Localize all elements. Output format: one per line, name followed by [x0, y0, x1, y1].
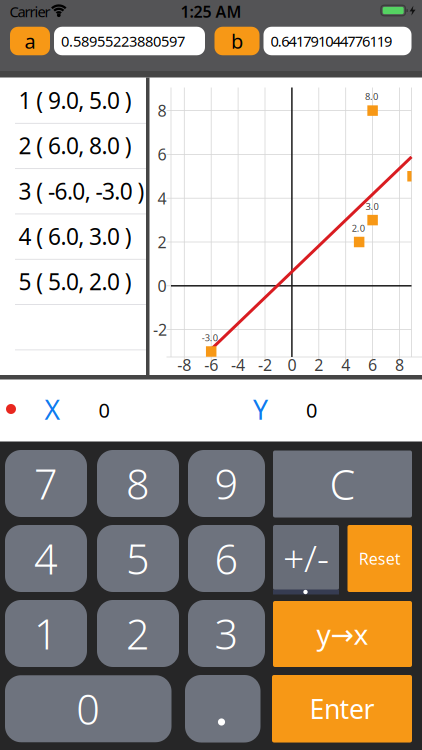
staticText: 6 [214, 531, 238, 586]
staticText: 3 [214, 606, 238, 661]
staticText: 4 [157, 188, 166, 209]
staticText: C [329, 457, 355, 511]
staticText: 8 [157, 100, 166, 121]
staticText: Reset [359, 548, 401, 569]
staticText: 0 [287, 354, 296, 375]
staticText: -8 [177, 354, 191, 375]
staticText: 8 [126, 456, 150, 511]
staticText: Enter [309, 691, 374, 726]
button[interactable]: +/- [273, 525, 339, 590]
staticText: 8.0 [365, 90, 378, 103]
button[interactable]: 3 ( -6.0, -3.0 ) [0, 168, 145, 213]
button[interactable]: 3 [188, 600, 265, 667]
button[interactable]: 8 [97, 450, 179, 517]
button[interactable]: Decimal point [185, 675, 260, 742]
button[interactable]: Enter [272, 675, 412, 742]
staticText: 3 ( -6.0, -3.0 ) [18, 176, 144, 206]
staticText: 2 [157, 231, 166, 253]
staticText: 1:25 AM [180, 1, 241, 22]
staticText: 2 ( 6.0, 8.0 ) [18, 130, 132, 161]
staticText: 4 ( 6.0, 3.0 ) [18, 221, 132, 251]
staticText: 1 [34, 606, 58, 661]
button[interactable]: C [273, 450, 412, 517]
button[interactable]: 9 [188, 450, 265, 517]
staticText: 0 [306, 397, 317, 423]
staticText: 0.641791044776119 [270, 31, 392, 51]
staticText: 5 ( 5.0, 2.0 ) [18, 266, 132, 296]
button[interactable]: 2 [97, 600, 179, 667]
staticText: 4 [34, 531, 58, 586]
staticText: 8 [395, 354, 404, 375]
button[interactable]: Reset [347, 525, 412, 592]
staticText: y→x [316, 615, 368, 653]
staticText: a [24, 28, 35, 54]
staticText: 5 [126, 531, 150, 586]
staticText: -2 [153, 319, 167, 340]
button[interactable]: 2 ( 6.0, 8.0 ) [0, 123, 145, 168]
staticText: 7 [34, 456, 58, 511]
staticText: 9 [214, 456, 238, 511]
button[interactable]: 5 [97, 525, 179, 592]
button[interactable]: b [214, 27, 259, 55]
staticText: +/- [283, 533, 329, 582]
staticText: -4 [231, 354, 245, 375]
button[interactable]: 7 [5, 450, 87, 517]
staticText: 3.0 [365, 200, 378, 212]
button[interactable]: 1 ( 9.0, 5.0 ) [0, 78, 145, 123]
button[interactable]: a [10, 27, 50, 55]
staticText: 6 [157, 144, 166, 165]
staticText: 6 [368, 354, 377, 375]
staticText: -2 [258, 354, 272, 375]
staticText: 2 [314, 354, 323, 375]
staticText: 0.58955223880597 [61, 31, 185, 51]
staticText: 0 [76, 681, 100, 736]
staticText: 0 [98, 397, 109, 423]
button[interactable]: 5 ( 5.0, 2.0 ) [0, 259, 145, 304]
button[interactable]: y→x [273, 601, 412, 667]
staticText: Y [253, 392, 268, 427]
staticText: X [44, 392, 60, 427]
staticText: -3.0 [202, 331, 218, 344]
button[interactable]: 4 ( 6.0, 3.0 ) [0, 214, 145, 259]
staticText: -6 [204, 354, 218, 375]
staticText: 2.0 [352, 222, 365, 234]
staticText: b [231, 28, 243, 54]
staticText: 1 ( 9.0, 5.0 ) [18, 85, 132, 115]
staticText: 4 [341, 354, 350, 375]
button[interactable]: 1 [5, 600, 87, 667]
button[interactable]: 4 [5, 525, 87, 592]
staticText: 2 [126, 606, 150, 661]
button[interactable]: 6 [188, 525, 265, 592]
staticText: Carrier [9, 2, 50, 21]
button[interactable]: 0 [5, 675, 171, 742]
staticText: 0 [157, 275, 166, 296]
